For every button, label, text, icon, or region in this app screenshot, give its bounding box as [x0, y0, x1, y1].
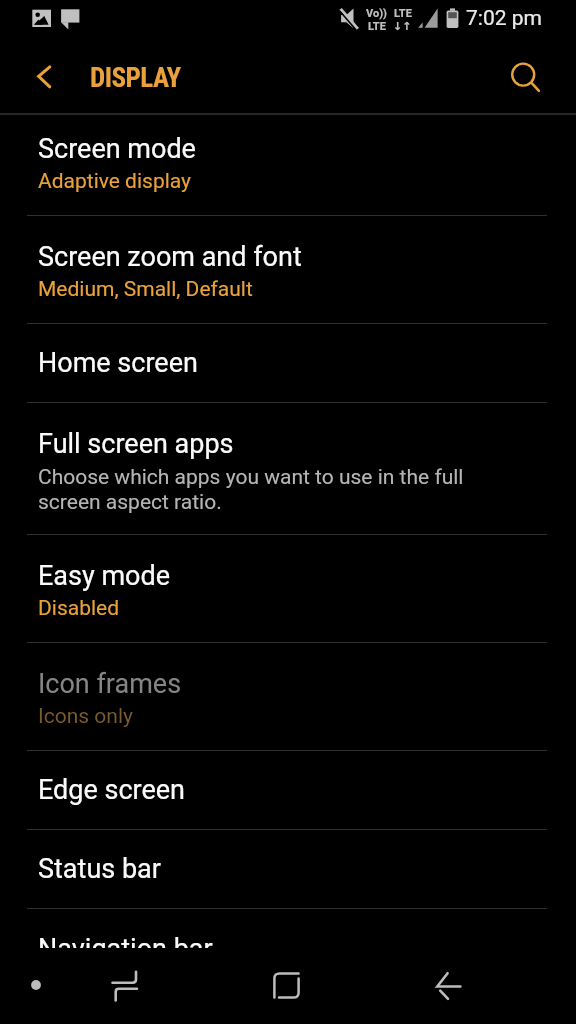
button[interactable]: Screen zoom and font — [0, 216, 576, 323]
staticText: Adaptive display — [38, 168, 192, 193]
button[interactable]: Home — [261, 960, 312, 1011]
staticText: Navigation bar — [38, 933, 213, 948]
staticText: ↓↑ — [393, 20, 412, 33]
button[interactable]: Easy mode — [0, 535, 576, 642]
button[interactable]: Screen mode — [0, 115, 576, 215]
staticText: Home screen — [38, 347, 198, 379]
staticText: Vo)) — [366, 7, 387, 20]
staticText: LTE — [394, 7, 412, 20]
button[interactable]: Home screen — [0, 324, 576, 402]
button[interactable]: Status bar — [0, 830, 576, 908]
staticText: Easy mode — [38, 560, 171, 592]
button[interactable]: Edge screen — [0, 751, 576, 829]
button[interactable]: Full screen apps — [0, 403, 576, 534]
staticText: Full screen apps — [38, 428, 234, 460]
staticText: Medium, Small, Default — [38, 276, 253, 301]
button[interactable]: Recent apps — [110, 971, 140, 1001]
staticText: Screen zoom and font — [38, 241, 302, 273]
staticText: Screen mode — [38, 133, 196, 165]
staticText: Edge screen — [38, 774, 186, 806]
staticText: Icons only — [38, 703, 133, 728]
staticText: Status bar — [38, 853, 161, 885]
staticText: Choose which apps you want to use in the… — [38, 464, 464, 514]
button[interactable]: Icon frames — [0, 643, 576, 750]
button[interactable]: Navigate up — [15, 47, 75, 107]
staticText: Icon frames — [38, 668, 182, 700]
button[interactable]: Back — [436, 972, 462, 998]
staticText: 7:02 pm — [466, 5, 542, 30]
button[interactable]: Navigation bar — [0, 909, 576, 948]
staticText: LTE — [368, 20, 386, 33]
staticText: Disabled — [38, 595, 120, 620]
staticText: DISPLAY — [90, 62, 181, 94]
button[interactable]: Search — [494, 47, 554, 107]
